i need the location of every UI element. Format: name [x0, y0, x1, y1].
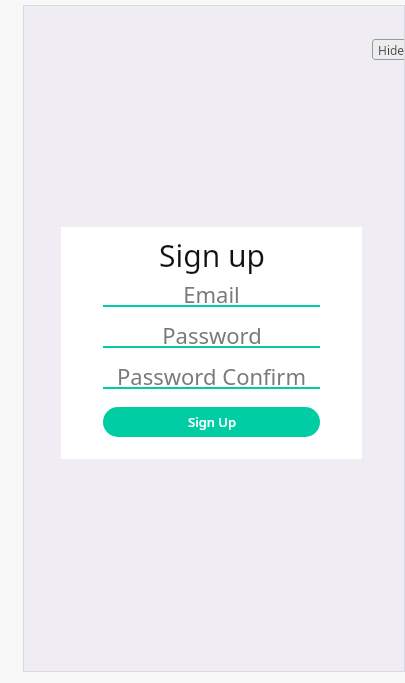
staticText: Password Confirm — [117, 361, 306, 387]
staticText: Password — [162, 320, 262, 346]
button[interactable]: Password — [103, 320, 320, 348]
staticText: Sign up — [159, 235, 265, 276]
staticText: Hide — [378, 42, 405, 58]
staticText: Email — [183, 279, 240, 305]
button[interactable]: Password Confirm — [103, 361, 320, 389]
button[interactable]: Sign Up — [103, 407, 320, 437]
button[interactable]: Hide — [372, 39, 405, 60]
button[interactable]: Email — [103, 279, 320, 307]
staticText: Sign Up — [188, 413, 236, 431]
